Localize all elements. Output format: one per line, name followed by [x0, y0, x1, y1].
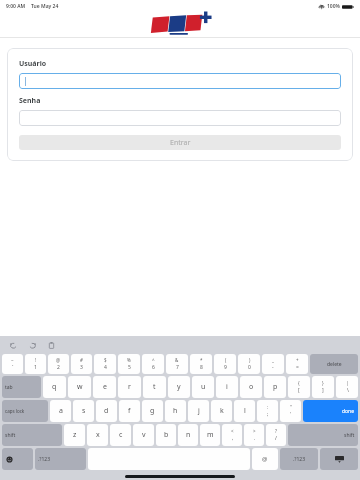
button[interactable]: x	[87, 424, 108, 446]
button[interactable]: {	[288, 376, 310, 398]
button[interactable]: !	[25, 354, 46, 374]
button[interactable]: }	[312, 376, 334, 398]
button[interactable]: r	[118, 376, 141, 398]
staticText: /	[275, 435, 277, 442]
button[interactable]: m	[200, 424, 220, 446]
button[interactable]: >	[244, 424, 264, 446]
button[interactable]: #	[71, 354, 92, 374]
staticText: shift	[344, 432, 355, 439]
button[interactable]: :	[257, 400, 278, 422]
button[interactable]: @	[252, 448, 278, 470]
staticText: .?123	[38, 456, 51, 463]
staticText: _	[272, 357, 274, 363]
button[interactable]: h	[165, 400, 186, 422]
button[interactable]: <	[222, 424, 242, 446]
staticText: c	[119, 430, 123, 440]
button[interactable]	[19, 73, 341, 89]
button[interactable]: y	[168, 376, 190, 398]
button[interactable]: Hide keyboard	[320, 448, 358, 470]
button[interactable]: delete	[310, 354, 358, 374]
staticText: Usuário	[19, 59, 47, 69]
button[interactable]: g	[142, 400, 163, 422]
staticText: %	[127, 357, 131, 363]
button[interactable]: u	[192, 376, 214, 398]
button[interactable]: +	[286, 354, 308, 374]
button[interactable]: $	[94, 354, 116, 374]
button[interactable]: %	[118, 354, 140, 374]
button[interactable]	[19, 110, 341, 126]
button[interactable]: *	[190, 354, 212, 374]
button[interactable]: q	[43, 376, 66, 398]
staticText: `	[12, 364, 14, 371]
button[interactable]: c	[110, 424, 131, 446]
button[interactable]: z	[64, 424, 85, 446]
button[interactable]: ^	[142, 354, 164, 374]
button[interactable]: &	[166, 354, 188, 374]
staticText: $	[104, 357, 107, 363]
staticText: caps lock	[5, 408, 25, 414]
button[interactable]: o	[240, 376, 262, 398]
button[interactable]: l	[234, 400, 255, 422]
button[interactable]: Undo	[8, 340, 19, 351]
button[interactable]: e	[93, 376, 116, 398]
staticText: g	[150, 406, 155, 416]
button[interactable]: .?123	[280, 448, 318, 470]
button[interactable]: (	[214, 354, 236, 374]
button[interactable]: p	[264, 376, 286, 398]
button[interactable]: done	[303, 400, 358, 422]
button[interactable]: d	[96, 400, 117, 422]
staticText: 9:00 AM	[6, 3, 26, 10]
staticText: q	[52, 382, 57, 392]
staticText: (	[225, 357, 227, 363]
staticText: +	[296, 357, 299, 363]
button[interactable]: Emoji	[2, 448, 33, 470]
button[interactable]: "	[280, 400, 301, 422]
staticText: #	[80, 357, 83, 363]
staticText: t	[153, 382, 156, 392]
button[interactable]: a	[50, 400, 71, 422]
button[interactable]: Entrar	[19, 135, 341, 150]
staticText: >	[253, 428, 256, 434]
staticText: d	[104, 406, 109, 416]
button[interactable]: n	[178, 424, 198, 446]
button[interactable]: j	[188, 400, 209, 422]
button[interactable]: shift	[2, 424, 62, 446]
button[interactable]: v	[133, 424, 154, 446]
staticText: a	[59, 406, 63, 416]
staticText: ^	[152, 357, 155, 363]
button[interactable]: b	[156, 424, 176, 446]
button[interactable]: w	[68, 376, 91, 398]
button[interactable]: ?	[266, 424, 286, 446]
button[interactable]: .?123	[35, 448, 86, 470]
button[interactable]: s	[73, 400, 94, 422]
staticText: =	[296, 364, 299, 371]
button[interactable]: t	[143, 376, 166, 398]
staticText: .	[254, 435, 256, 442]
staticText: 9	[224, 364, 227, 371]
staticText: i	[226, 382, 228, 392]
staticText: u	[201, 382, 206, 392]
staticText: {	[298, 380, 300, 386]
staticText: f	[128, 406, 131, 416]
button[interactable]: )	[238, 354, 260, 374]
button[interactable]: f	[119, 400, 140, 422]
button[interactable]: ~	[2, 354, 23, 374]
staticText: m	[207, 430, 214, 440]
button[interactable]: shift	[288, 424, 358, 446]
button[interactable]: Paste	[46, 340, 57, 351]
button[interactable]: k	[211, 400, 232, 422]
button[interactable]: @	[48, 354, 69, 374]
button[interactable]: caps lock	[2, 400, 48, 422]
staticText: z	[73, 430, 77, 440]
staticText: l	[244, 406, 246, 416]
staticText: n	[186, 430, 191, 440]
button[interactable]: |	[336, 376, 358, 398]
staticText: 1	[34, 364, 37, 371]
staticText: o	[249, 382, 254, 392]
button[interactable]: _	[262, 354, 284, 374]
button[interactable]: Redo	[27, 340, 38, 351]
button[interactable]: tab	[2, 376, 41, 398]
staticText: k	[220, 406, 224, 416]
button[interactable]: i	[216, 376, 238, 398]
